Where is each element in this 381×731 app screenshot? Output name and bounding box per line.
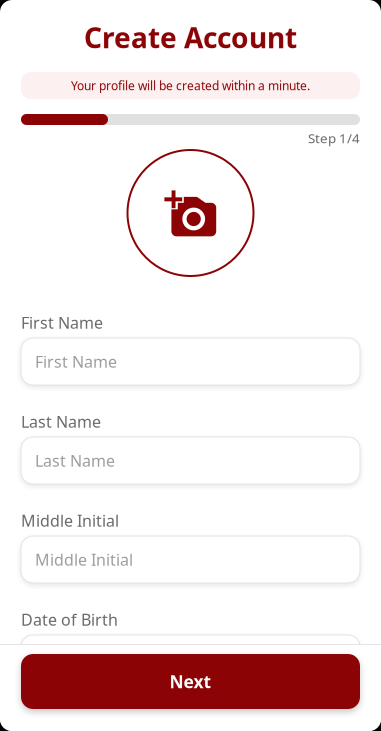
button[interactable]: Add profile photo [127,150,253,276]
staticText: First Name [35,351,117,372]
button[interactable]: Middle Initial [21,536,360,583]
button[interactable]: Next [21,654,360,709]
staticText: Middle Initial [35,549,133,570]
staticText: Your profile will be created within a mi… [71,77,310,93]
button[interactable]: First Name [21,338,360,385]
staticText: First Name [21,312,103,333]
staticText: Last Name [21,411,101,432]
staticText: Step 1/4 [308,129,360,147]
staticText: Date of Birth [35,648,132,669]
staticText: Create Account [84,19,297,56]
staticText: Middle Initial [21,510,119,531]
staticText: Date of Birth [21,609,118,630]
staticText: Next [169,670,211,693]
button[interactable]: Date of Birth [21,635,360,682]
button[interactable]: Last Name [21,437,360,484]
staticText: Last Name [35,450,115,471]
